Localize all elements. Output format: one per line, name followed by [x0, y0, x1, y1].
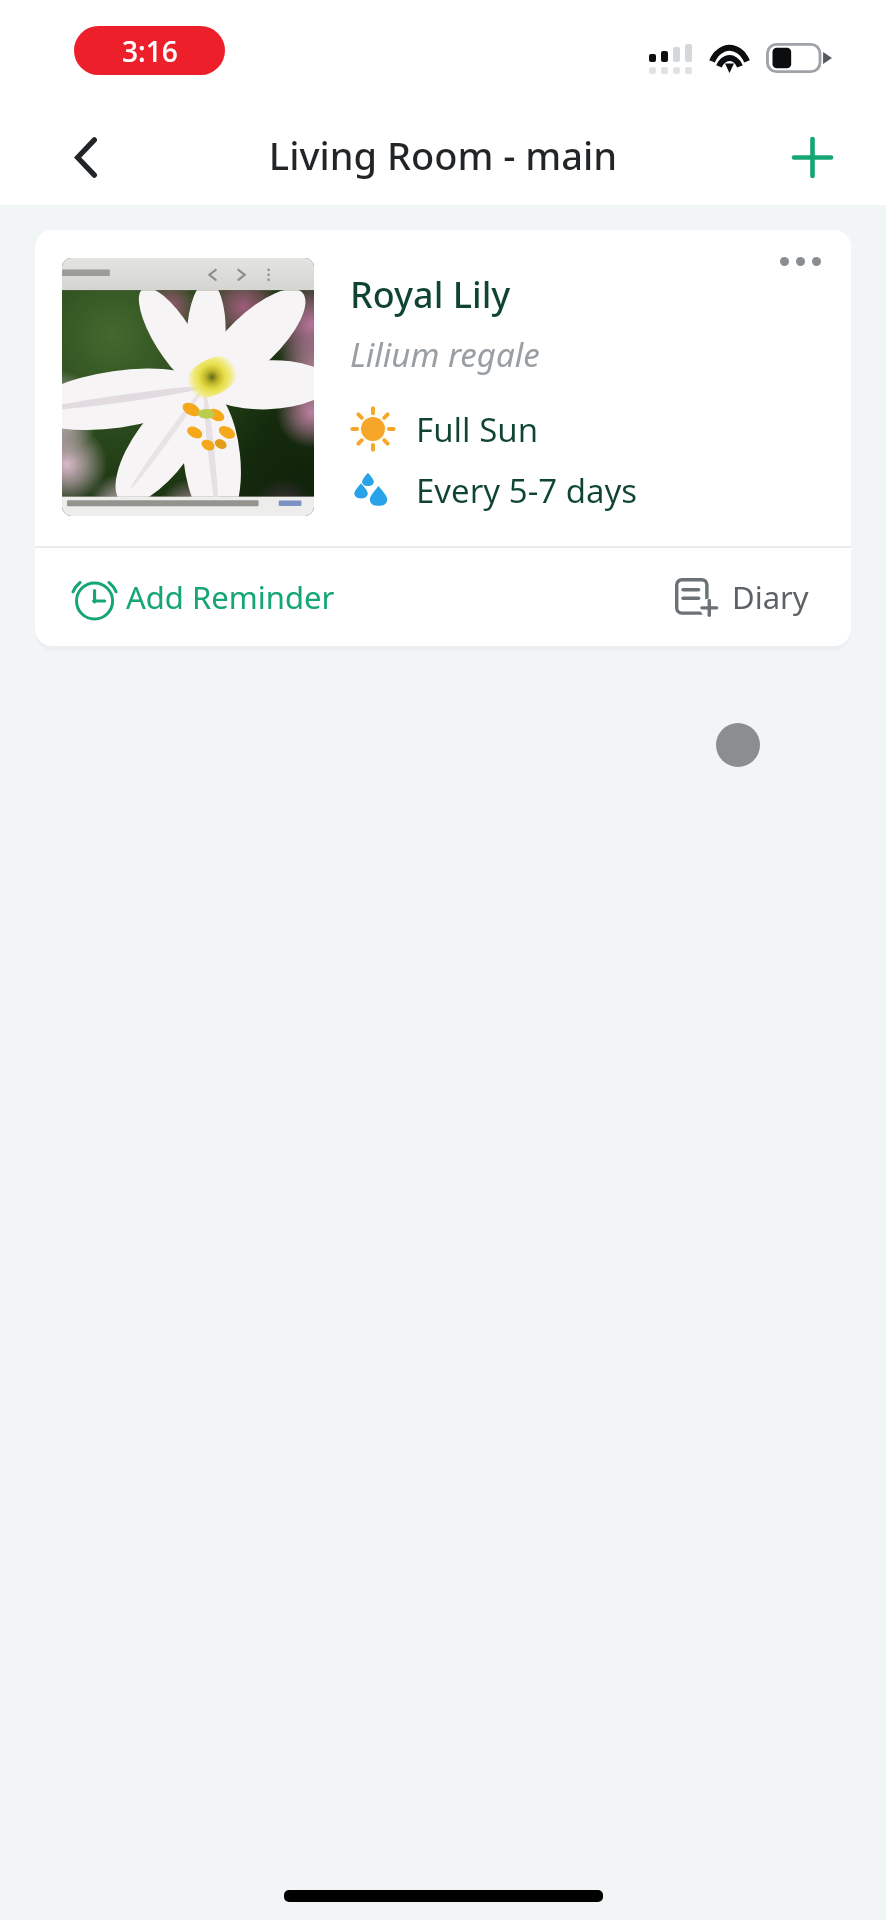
staticText: Living Room - main [0, 129, 886, 181]
staticText: Every 5-7 days [416, 468, 638, 513]
staticText: Add Reminder [126, 576, 335, 618]
button[interactable]: Plant photo placeholder [716, 723, 760, 767]
staticText: Full Sun [416, 407, 539, 452]
staticText: Diary [732, 576, 809, 618]
button[interactable]: Diary [655, 549, 851, 645]
button[interactable]: Add plant [776, 121, 848, 193]
button[interactable]: Back [50, 121, 122, 193]
staticText: 3:16 [122, 32, 178, 70]
staticText: Lilium regale [350, 332, 540, 377]
button[interactable]: More options [774, 247, 827, 276]
button[interactable]: Add Reminder [35, 549, 355, 645]
staticText: Royal Lily [350, 270, 511, 319]
